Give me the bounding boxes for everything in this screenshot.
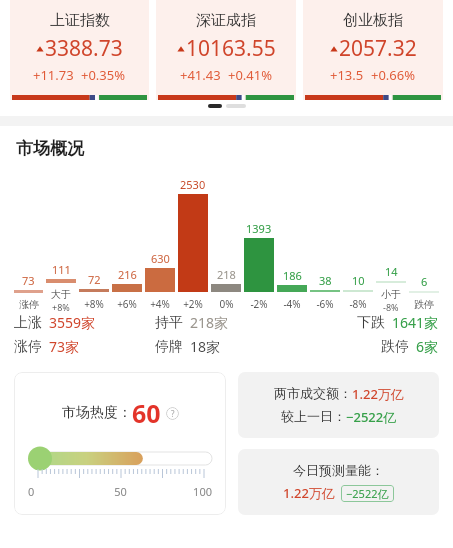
button[interactable]: 深证成指 (156, 0, 296, 100)
button[interactable]: 216 (112, 174, 142, 311)
staticText: 10 (352, 273, 365, 288)
staticText: +0.41% (228, 66, 273, 84)
staticText: -4% (283, 297, 301, 311)
staticText: 186 (283, 268, 302, 283)
button[interactable]: 创业板指 (303, 0, 443, 100)
staticText: 2057.32 (339, 34, 417, 63)
staticText: 3559家 (49, 313, 96, 332)
staticText: +41.43 (180, 66, 221, 84)
button[interactable]: 72 (79, 174, 109, 311)
staticText: 630 (151, 251, 170, 266)
button[interactable]: 上证指数 (10, 0, 149, 100)
staticText: ? (171, 408, 175, 419)
staticText: 111 (52, 262, 71, 277)
staticText: 涨停 (19, 298, 39, 311)
staticText: 涨停 (14, 338, 42, 356)
staticText: 停牌 (155, 338, 183, 356)
staticText: 1.22万亿 (283, 484, 335, 502)
button[interactable]: 今日预测量能： (238, 449, 439, 515)
staticText: +2% (183, 297, 203, 311)
staticText: 跌停 (414, 298, 434, 311)
staticText: 下跌 (357, 314, 385, 332)
staticText: 60 (132, 396, 161, 430)
staticText: +8% (52, 301, 70, 311)
staticText: 72 (88, 272, 101, 287)
staticText: 6家 (416, 337, 439, 356)
button[interactable]: 73 (14, 175, 43, 311)
staticText: 0 (28, 484, 90, 499)
staticText: 市场热度： (62, 404, 132, 422)
staticText: -8% (349, 297, 367, 311)
staticText: 持平 (155, 314, 183, 332)
button[interactable]: 帮助 (166, 407, 179, 420)
button[interactable]: 停牌 (155, 337, 297, 356)
button[interactable]: 6 (409, 175, 439, 311)
staticText: -2% (250, 297, 268, 311)
button[interactable]: Page 1 (208, 104, 222, 108)
staticText: 跌停 (381, 338, 409, 356)
button[interactable]: 涨停 (14, 337, 155, 356)
staticText: 小于 (381, 288, 401, 301)
staticText: 216 (118, 267, 137, 282)
button[interactable]: 跌停 (297, 337, 439, 356)
staticText: 两市成交额： (274, 385, 352, 401)
button[interactable]: 下跌 (297, 313, 439, 332)
staticText: +4% (150, 297, 170, 311)
staticText: 1641家 (392, 313, 439, 332)
staticText: +0.35% (81, 66, 126, 84)
staticText: −2522亿 (346, 486, 389, 501)
staticText: 10163.55 (186, 34, 276, 63)
staticText: 上涨 (14, 314, 42, 332)
staticText: 50 (90, 484, 151, 499)
staticText: 3388.73 (45, 34, 123, 63)
button[interactable]: Page 2 (226, 104, 246, 108)
staticText: 上证指数 (50, 11, 110, 30)
staticText: 较上一日： (281, 408, 346, 424)
button[interactable]: 10 (343, 174, 373, 311)
staticText: 73家 (49, 337, 80, 356)
button[interactable]: 持平 (155, 313, 297, 332)
staticText: 18家 (190, 337, 221, 356)
staticText: -8% (383, 301, 399, 311)
button[interactable]: 1393 (244, 174, 274, 311)
button[interactable]: 630 (145, 174, 175, 311)
button[interactable]: 111 (46, 165, 76, 311)
button[interactable]: 2530 (178, 174, 208, 311)
staticText: 创业板指 (343, 11, 403, 30)
staticText: 73 (22, 273, 35, 288)
staticText: 100 (151, 484, 212, 499)
staticText: 1.22万亿 (352, 385, 404, 403)
button[interactable]: 186 (277, 174, 307, 311)
staticText: +0.66% (371, 66, 416, 84)
button[interactable]: 市场热度： (14, 372, 226, 515)
button[interactable]: 14 (376, 165, 406, 311)
staticText: 1393 (246, 221, 272, 236)
staticText: +13.5 (330, 66, 364, 84)
button[interactable]: 218 (211, 174, 241, 311)
staticText: 6 (421, 274, 428, 289)
staticText: +8% (84, 297, 104, 311)
staticText: 218家 (190, 313, 229, 332)
staticText: 14 (385, 264, 398, 279)
staticText: 218 (217, 267, 236, 282)
button[interactable]: 两市成交额： (238, 372, 439, 438)
staticText: 市场概况 (16, 138, 84, 159)
button[interactable]: 38 (310, 174, 340, 311)
staticText: 大于 (51, 288, 71, 301)
staticText: +11.73 (33, 66, 74, 84)
staticText: -6% (316, 297, 334, 311)
staticText: 0% (219, 297, 234, 311)
staticText: −2522亿 (346, 408, 397, 426)
staticText: +6% (117, 297, 137, 311)
staticText: 38 (319, 273, 332, 288)
button[interactable]: 上涨 (14, 313, 155, 332)
staticText: 2530 (180, 177, 206, 192)
staticText: 今日预测量能： (293, 462, 384, 478)
staticText: 深证成指 (196, 11, 256, 30)
